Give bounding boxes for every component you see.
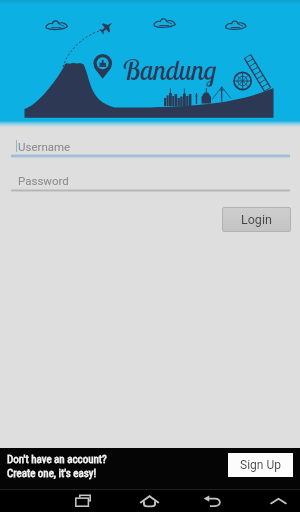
staticText: Don't have an account? [7,453,107,466]
button[interactable]: Home [134,489,164,512]
button[interactable]: Show menu [263,489,293,512]
staticText: Bandung [122,53,217,87]
button[interactable]: Back [197,489,227,512]
button[interactable]: Don't have an account? [7,453,107,480]
button[interactable]: Login [222,207,291,232]
button[interactable]: Password [11,172,290,192]
staticText: Sign Up [240,458,281,472]
staticText: Login [241,212,272,227]
staticText: Username [18,140,71,153]
staticText: Password [18,174,69,187]
button[interactable]: Username [11,138,290,158]
button[interactable]: Sign Up [228,453,293,477]
button[interactable]: Recent apps [68,489,98,512]
staticText: Create one, it's easy! [7,467,97,480]
